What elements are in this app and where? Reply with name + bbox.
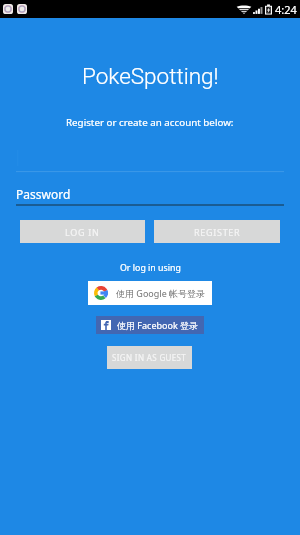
staticText: REGISTER <box>194 226 241 238</box>
button[interactable]: REGISTER <box>154 220 280 243</box>
staticText: Password <box>16 186 71 202</box>
staticText: Or log in using <box>120 262 181 274</box>
staticText: SIGN IN AS GUEST <box>112 352 187 363</box>
button[interactable]: 使用 Facebook 登录 <box>96 316 204 334</box>
staticText: LOG IN <box>65 226 100 238</box>
staticText: 使用 Google 帐号登录 <box>116 287 206 299</box>
button[interactable]: SIGN IN AS GUEST <box>107 346 192 369</box>
staticText: 使用 Facebook 登录 <box>117 319 199 331</box>
button[interactable]: 使用 Google 帐号登录 <box>88 281 212 305</box>
button[interactable]: LOG IN <box>20 220 145 243</box>
staticText: 4:24 <box>275 2 297 17</box>
staticText: Register or create an account below: <box>66 116 234 129</box>
staticText: PokeSpotting! <box>82 63 219 89</box>
